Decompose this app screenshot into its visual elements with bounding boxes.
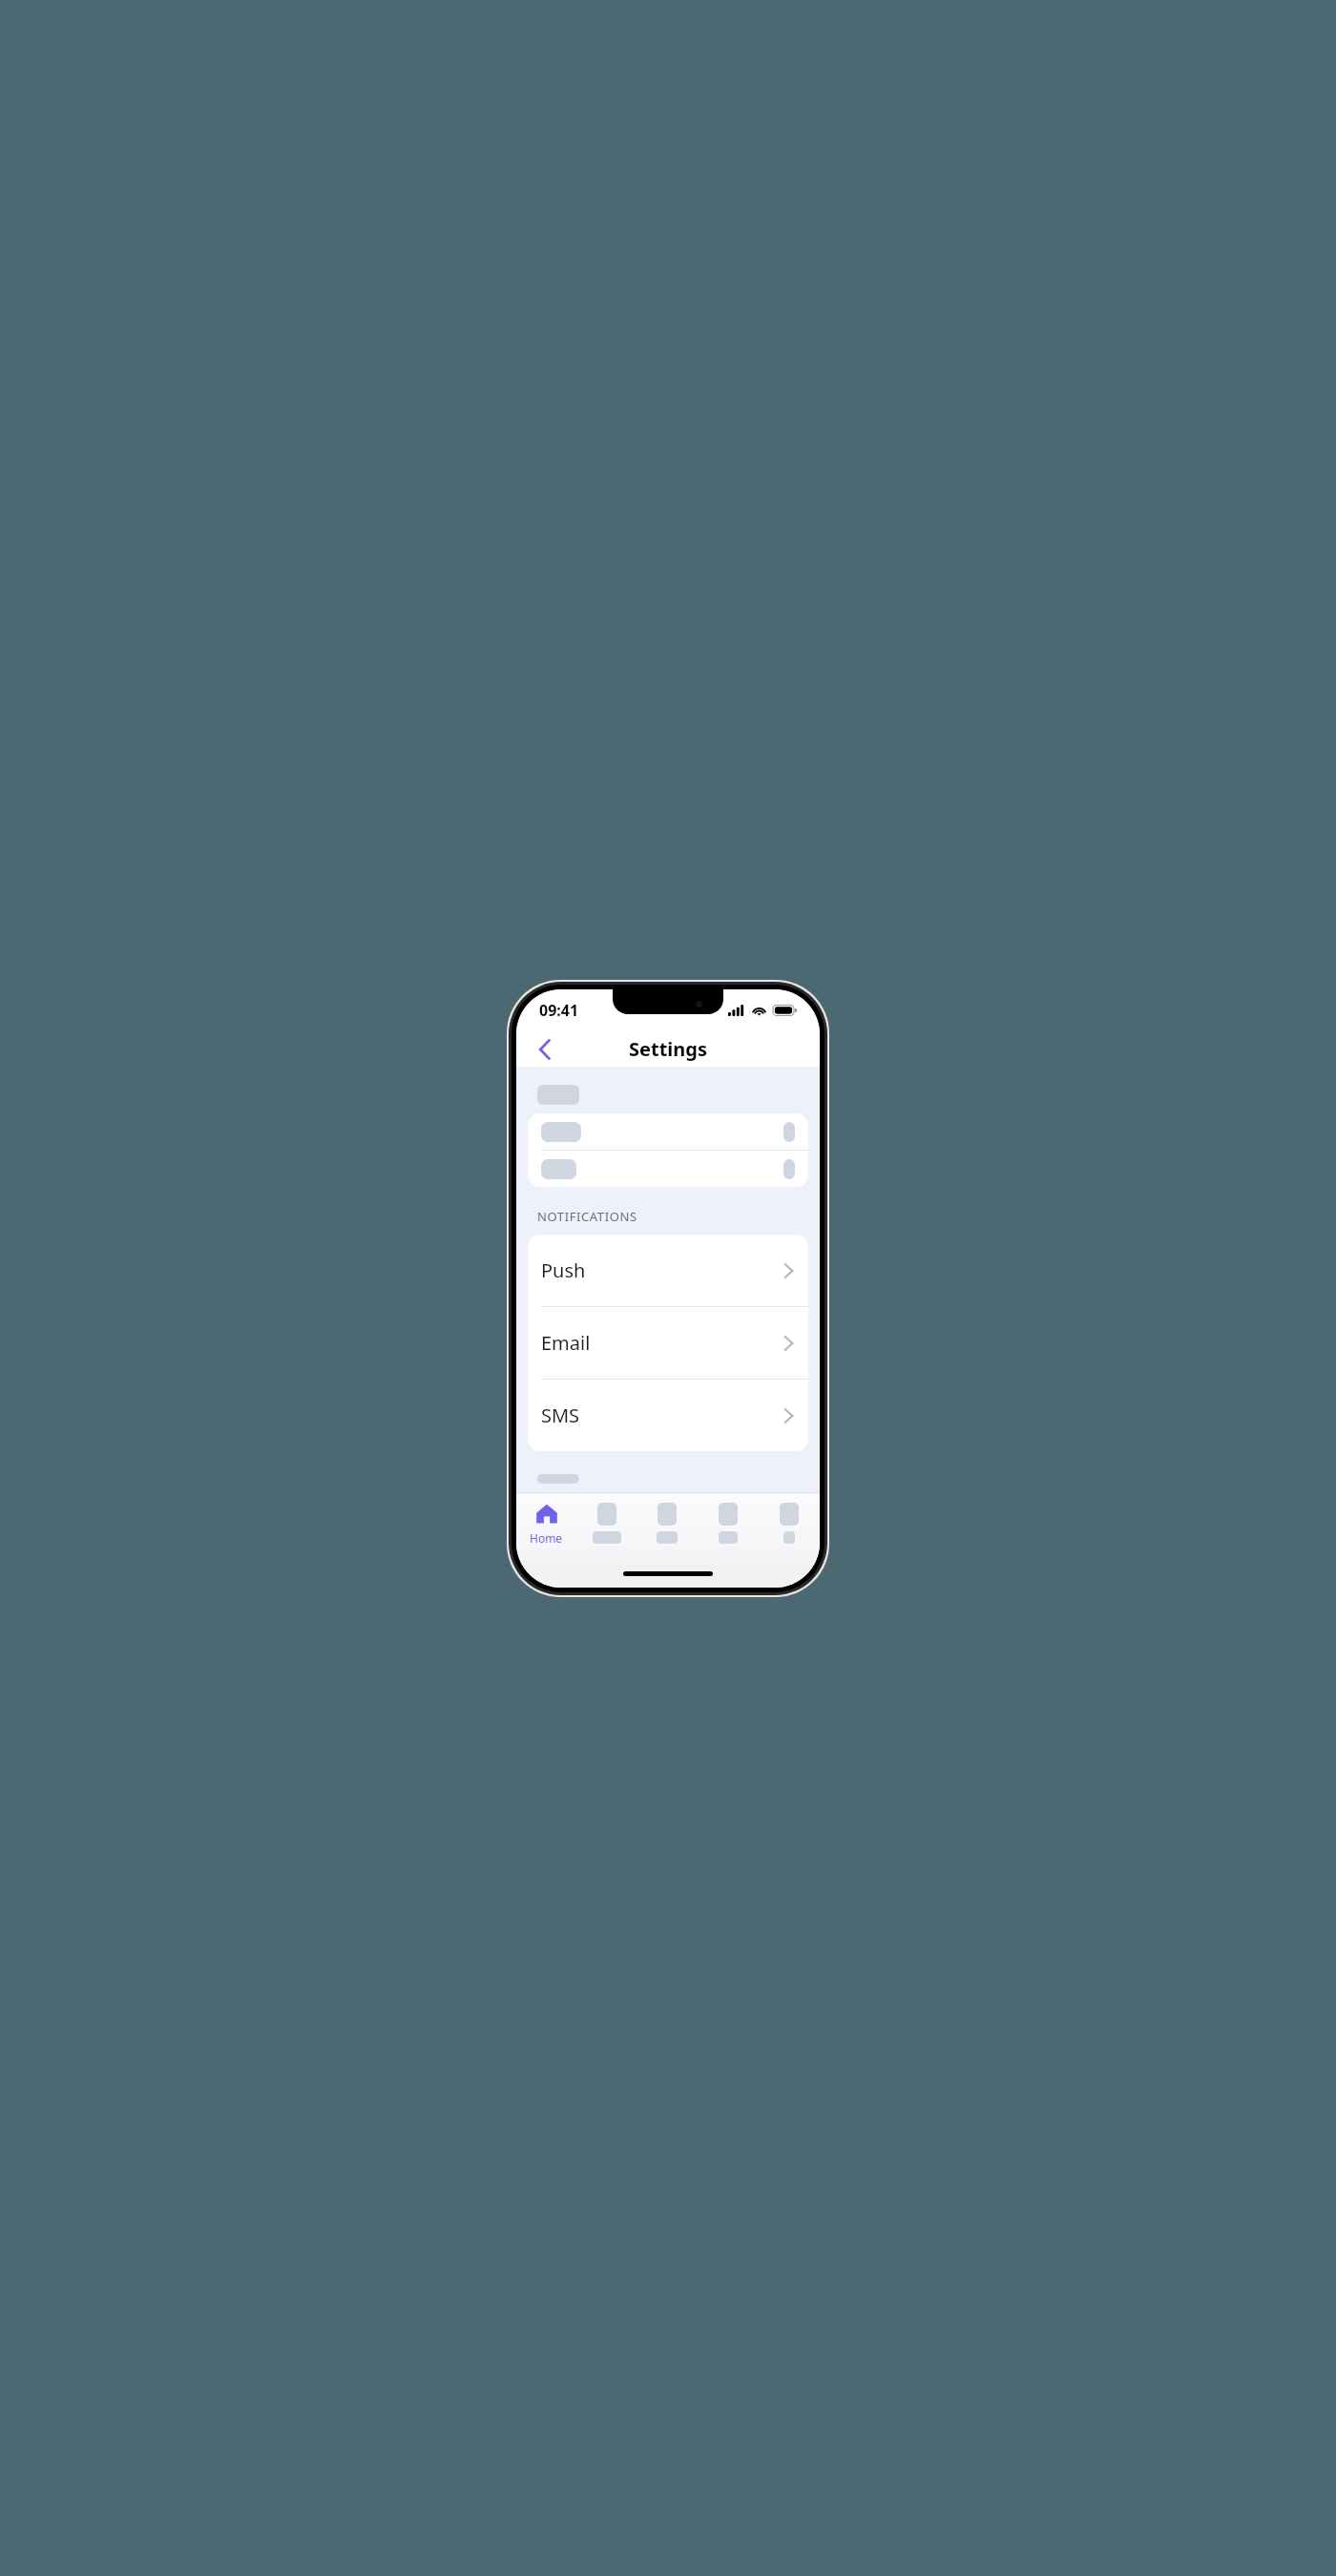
staticText: SMS <box>541 1402 580 1428</box>
staticText: Email <box>541 1330 591 1356</box>
button[interactable] <box>528 1113 808 1150</box>
button[interactable]: Home <box>516 1498 576 1563</box>
button[interactable]: Tab 3 <box>637 1498 698 1563</box>
button[interactable]: Tab 2 <box>576 1498 637 1563</box>
button[interactable]: Tab 4 <box>698 1498 759 1563</box>
staticText: 09:41 <box>539 1000 579 1021</box>
staticText: Home <box>530 1530 563 1546</box>
staticText: Push <box>541 1257 586 1283</box>
button[interactable]: Push <box>528 1235 808 1306</box>
button[interactable] <box>528 1151 808 1187</box>
button[interactable]: SMS <box>528 1380 808 1451</box>
button[interactable]: Tab 5 <box>759 1498 820 1563</box>
staticText: Settings <box>629 1036 707 1062</box>
button[interactable]: Back <box>528 1032 562 1067</box>
staticText: NOTIFICATIONS <box>537 1208 637 1225</box>
button[interactable]: Email <box>528 1307 808 1379</box>
